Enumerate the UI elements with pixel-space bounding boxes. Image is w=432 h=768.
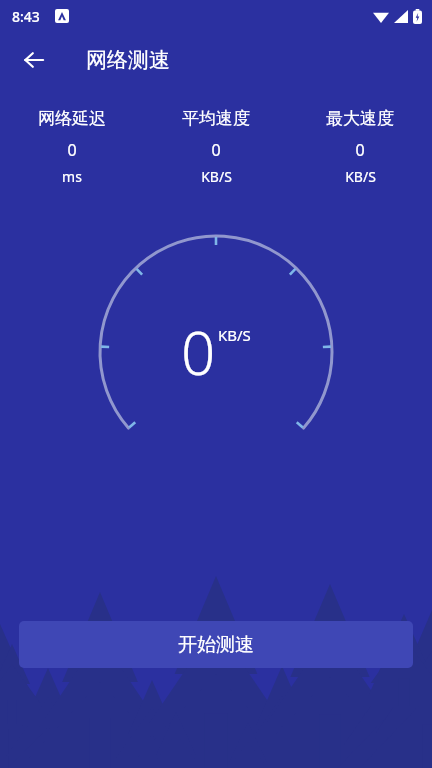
staticText: 0: [355, 139, 365, 161]
staticText: 开始测速: [178, 633, 254, 657]
staticText: 平均速度: [182, 108, 250, 129]
staticText: 8:43: [12, 7, 40, 26]
staticText: KB/S: [218, 325, 251, 345]
staticText: 0: [181, 311, 216, 393]
staticText: 0: [211, 139, 221, 161]
button[interactable]: Back: [10, 36, 58, 84]
staticText: 最大速度: [326, 108, 394, 129]
button[interactable]: 开始测速: [19, 621, 413, 668]
staticText: 网络延迟: [38, 108, 106, 129]
staticText: 0: [67, 139, 77, 161]
staticText: 网络测速: [86, 47, 170, 73]
staticText: ms: [62, 167, 82, 186]
staticText: KB/S: [345, 167, 376, 186]
staticText: KB/S: [201, 167, 232, 186]
